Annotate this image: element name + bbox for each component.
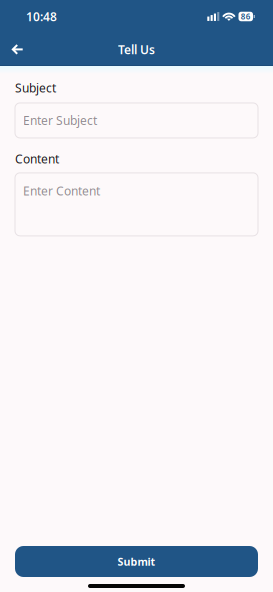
button[interactable]: Back xyxy=(0,33,34,66)
button[interactable]: Submit xyxy=(15,546,258,577)
staticText: Content xyxy=(15,151,59,167)
button[interactable]: Enter Subject xyxy=(15,103,258,138)
staticText: Enter Content xyxy=(23,183,100,199)
staticText: 86 xyxy=(241,11,251,22)
staticText: Tell Us xyxy=(118,41,155,57)
staticText: Subject xyxy=(15,80,56,96)
staticText: Submit xyxy=(117,554,155,569)
staticText: 10:48 xyxy=(26,8,57,24)
button[interactable]: Enter Content xyxy=(15,173,258,236)
staticText: Enter Subject xyxy=(23,112,97,128)
